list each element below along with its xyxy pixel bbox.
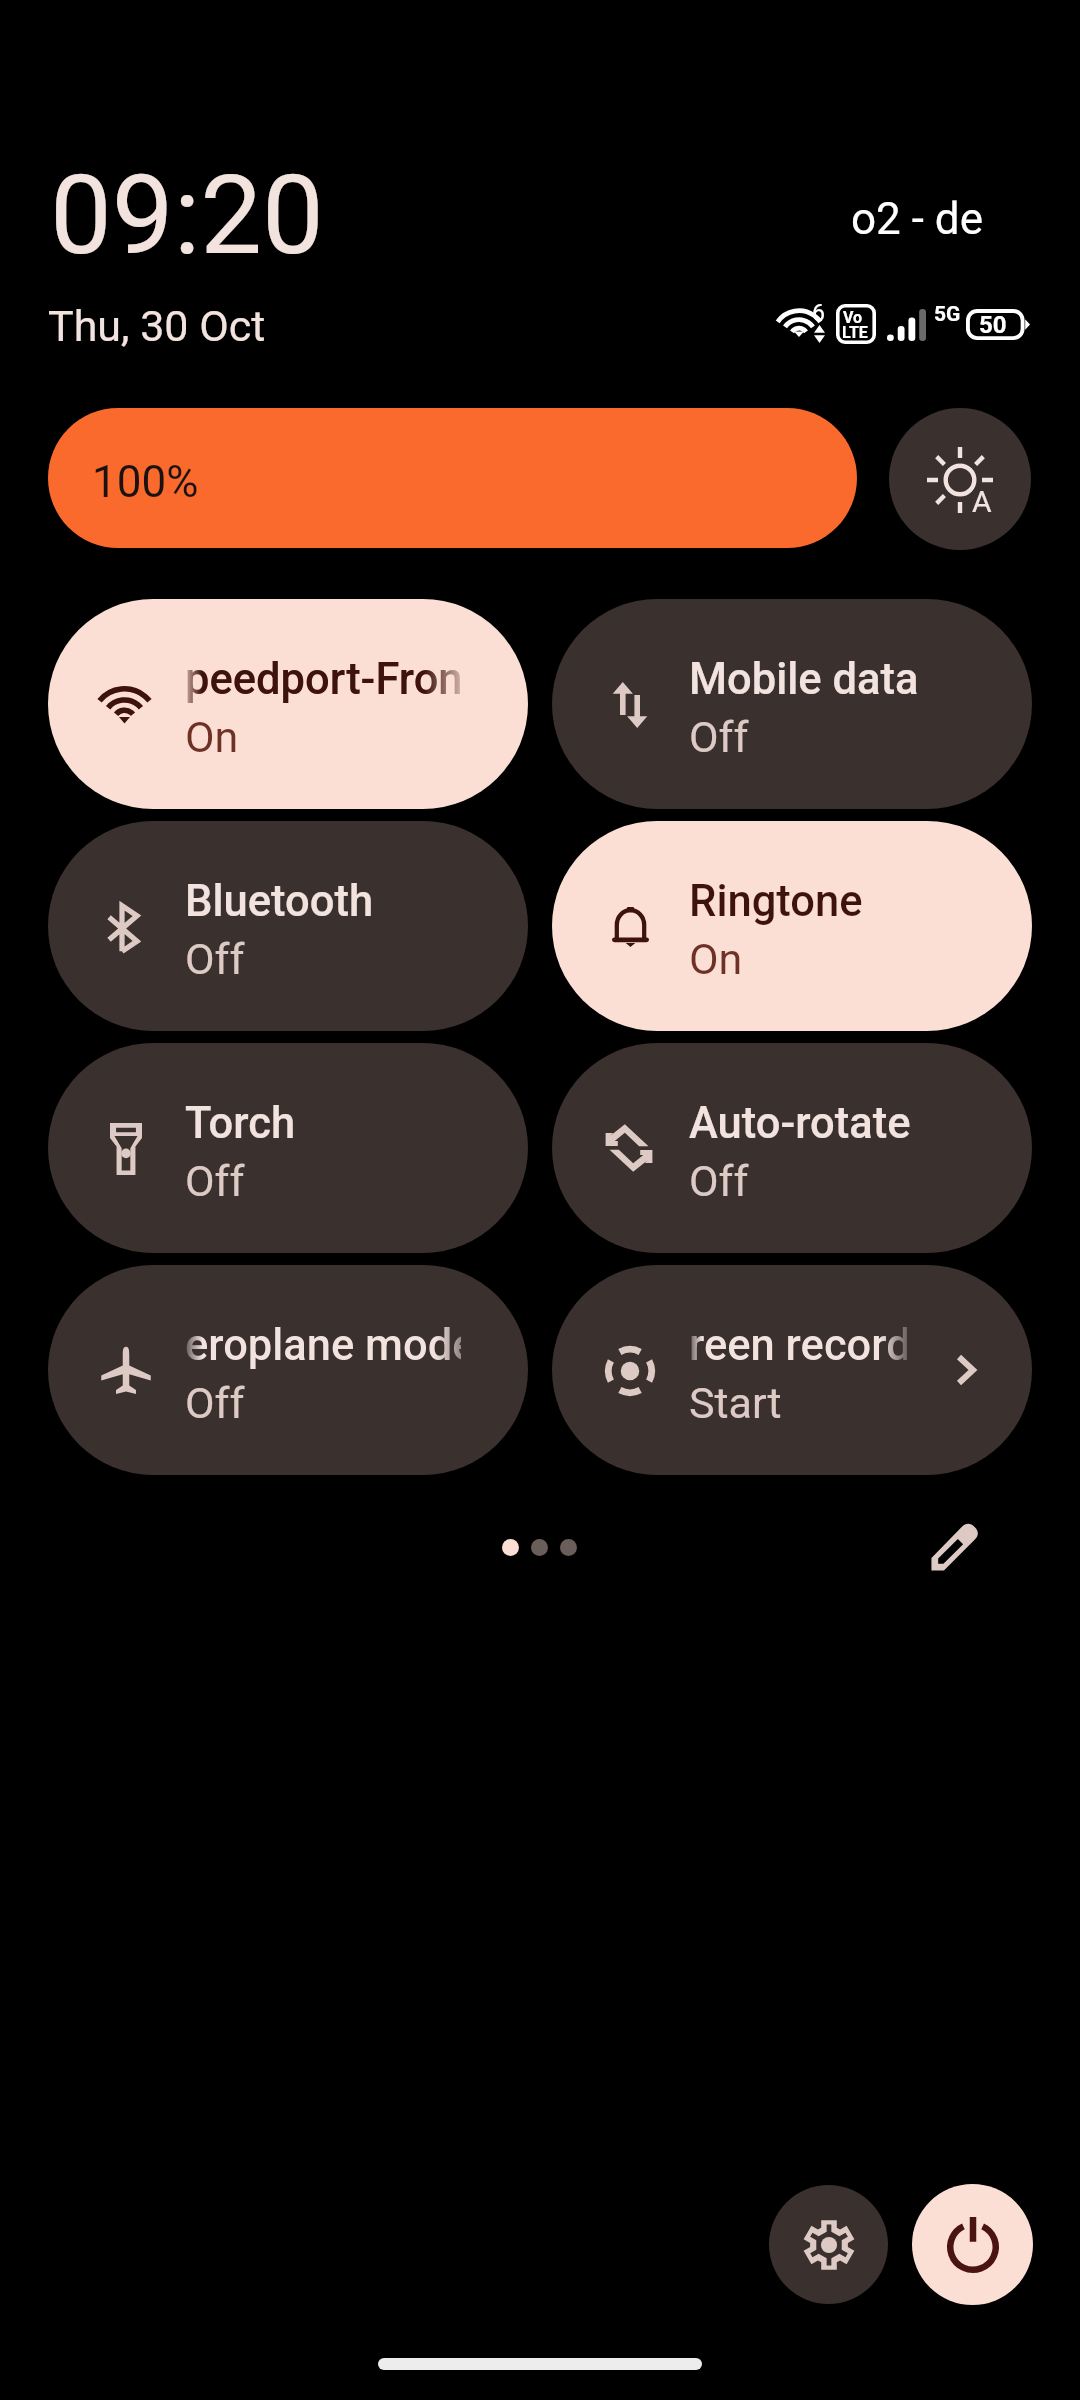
button[interactable]: Auto-rotate	[552, 1043, 1032, 1253]
staticText: On	[689, 934, 743, 984]
button[interactable]: Bluetooth	[48, 821, 528, 1031]
staticText: 5G	[934, 302, 961, 327]
staticText: Auto-rotate	[689, 1098, 911, 1149]
staticText: 100%	[92, 456, 199, 508]
staticText: Bluetooth	[185, 876, 374, 927]
staticText: Off	[185, 934, 245, 984]
staticText: Thu, 30 Oct	[48, 301, 266, 351]
staticText: Torch	[185, 1098, 296, 1149]
button[interactable]: peedport-Fron	[48, 599, 528, 809]
button[interactable]: Auto brightness	[889, 408, 1031, 550]
staticText: Ringtone	[689, 876, 863, 927]
staticText: Off	[185, 1378, 245, 1428]
staticText: Off	[185, 1156, 245, 1206]
staticText: o2 - de	[851, 193, 983, 245]
staticText: A	[972, 484, 992, 519]
staticText: 50	[979, 311, 1007, 339]
button[interactable]: reen record	[552, 1265, 1032, 1475]
staticText: peedport-Fron	[185, 654, 461, 705]
staticText: Start	[689, 1378, 782, 1428]
button[interactable]: Edit tiles	[920, 1514, 988, 1582]
button[interactable]: Mobile data	[552, 599, 1032, 809]
staticText: Vo	[843, 308, 863, 327]
button[interactable]: Ringtone	[552, 821, 1032, 1031]
staticText: Off	[689, 1156, 749, 1206]
button[interactable]: eroplane mode	[48, 1265, 528, 1475]
staticText: 6	[812, 300, 825, 327]
staticText: eroplane mode	[185, 1320, 461, 1371]
button[interactable]: 100%	[48, 408, 857, 548]
staticText: On	[185, 712, 239, 762]
staticText: Mobile data	[689, 654, 919, 705]
button[interactable]: Settings	[769, 2185, 888, 2304]
button[interactable]: Power	[912, 2184, 1033, 2305]
button[interactable]: Torch	[48, 1043, 528, 1253]
staticText: 09:20	[50, 151, 324, 280]
staticText: reen record	[689, 1320, 907, 1371]
staticText: Off	[689, 712, 749, 762]
staticText: LTE	[842, 323, 868, 342]
